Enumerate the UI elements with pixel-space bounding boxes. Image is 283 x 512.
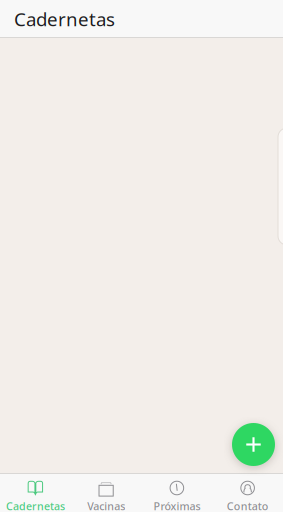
button[interactable]: Cadernetas [0, 473, 71, 512]
button[interactable]: Contato [212, 473, 283, 512]
staticText: Próximas [153, 499, 200, 512]
staticText: Contato [227, 499, 269, 512]
button[interactable]: Próximas [141, 473, 212, 512]
staticText: Cadernetas [6, 499, 65, 512]
button[interactable]: Vacinas [71, 473, 142, 512]
staticText: Cadernetas [14, 7, 115, 31]
button[interactable]: Adicionar [232, 423, 275, 466]
staticText: Vacinas [87, 499, 125, 512]
